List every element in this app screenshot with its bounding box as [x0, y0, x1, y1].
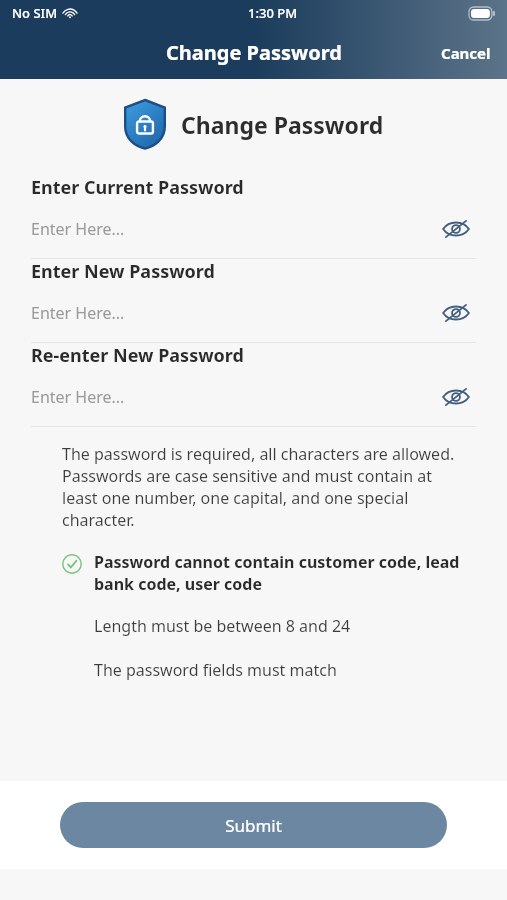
staticText: Submit: [225, 814, 282, 837]
staticText: Re-enter New Password: [31, 343, 244, 368]
staticText: The password fields must match: [94, 659, 337, 681]
staticText: Cancel: [441, 43, 491, 63]
staticText: Enter Here...: [31, 302, 125, 324]
staticText: Enter New Password: [31, 259, 215, 284]
staticText: Enter Current Password: [31, 175, 244, 200]
button[interactable]: Show password: [436, 298, 476, 328]
button[interactable]: Show password: [436, 214, 476, 244]
staticText: 1:30 PM: [248, 4, 298, 22]
button[interactable]: Submit: [60, 802, 447, 848]
button[interactable]: Enter New Password: [0, 259, 507, 343]
button[interactable]: Cancel: [425, 33, 507, 73]
button[interactable]: Enter Current Password: [0, 175, 507, 259]
staticText: The password is required, all characters…: [62, 443, 467, 531]
staticText: Change Password: [181, 109, 384, 140]
button[interactable]: Show password: [436, 382, 476, 412]
staticText: Change Password: [166, 39, 342, 66]
staticText: Enter Here...: [31, 218, 125, 240]
staticText: Password cannot contain customer code, l…: [94, 551, 467, 595]
staticText: Enter Here...: [31, 386, 125, 408]
button[interactable]: Re-enter New Password: [0, 343, 507, 427]
staticText: Length must be between 8 and 24: [94, 615, 351, 637]
staticText: No SIM: [12, 4, 58, 22]
